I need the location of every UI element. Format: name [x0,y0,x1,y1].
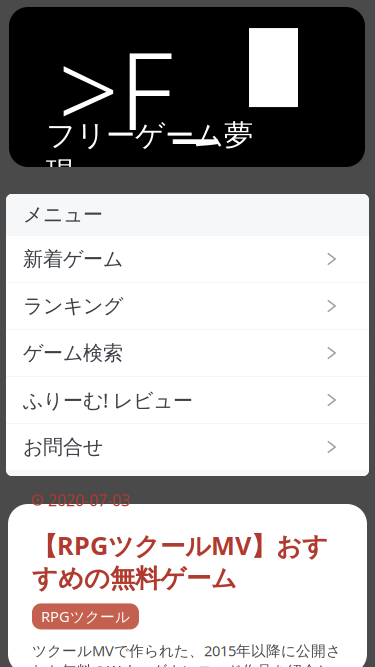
staticText: 新着ゲーム [23,246,123,272]
staticText: RPGツクール [41,606,130,626]
staticText: お問合せ [23,434,103,460]
staticText: >F_ [58,16,218,161]
staticText: ツクールMVで作られた、2015年以降に公開された無料のWeb・ダウンロード作品… [32,640,341,667]
staticText: ゲーム検索 [23,340,123,366]
staticText: 【RPGツクールMV】おすすめの無料ゲーム [32,528,328,594]
button[interactable]: ランキング [6,282,369,329]
button[interactable]: お問合せ [6,423,369,470]
staticText: フリーゲーム夢現 [46,117,253,191]
button[interactable]: ふりーむ! レビュー [6,376,369,423]
staticText: ふりーむ! レビュー [23,386,193,414]
staticText: 2020-07-03 [48,489,130,511]
button[interactable]: ゲーム検索 [6,329,369,376]
staticText: メニュー [23,202,103,227]
button[interactable]: 新着ゲーム [6,235,369,282]
staticText: ランキング [23,293,123,319]
